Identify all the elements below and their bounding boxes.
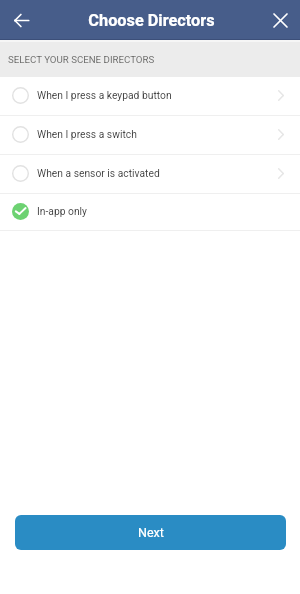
staticText: Choose Directors (88, 11, 215, 30)
staticText: When a sensor is activated (37, 167, 160, 179)
staticText: When I press a switch (37, 128, 137, 140)
staticText: SELECT YOUR SCENE DIRECTORS (8, 54, 155, 65)
button[interactable]: Close (258, 0, 300, 39)
staticText: When I press a keypad button (37, 89, 172, 101)
button[interactable]: When a sensor is activated (0, 155, 300, 193)
staticText: In-app only (37, 205, 87, 217)
button[interactable]: When I press a switch (0, 116, 300, 154)
button[interactable]: Next (15, 515, 286, 550)
button[interactable]: When I press a keypad button (0, 77, 300, 115)
button[interactable]: In-app only (0, 194, 300, 230)
staticText: Next (138, 525, 164, 540)
button[interactable]: Back (0, 0, 42, 39)
